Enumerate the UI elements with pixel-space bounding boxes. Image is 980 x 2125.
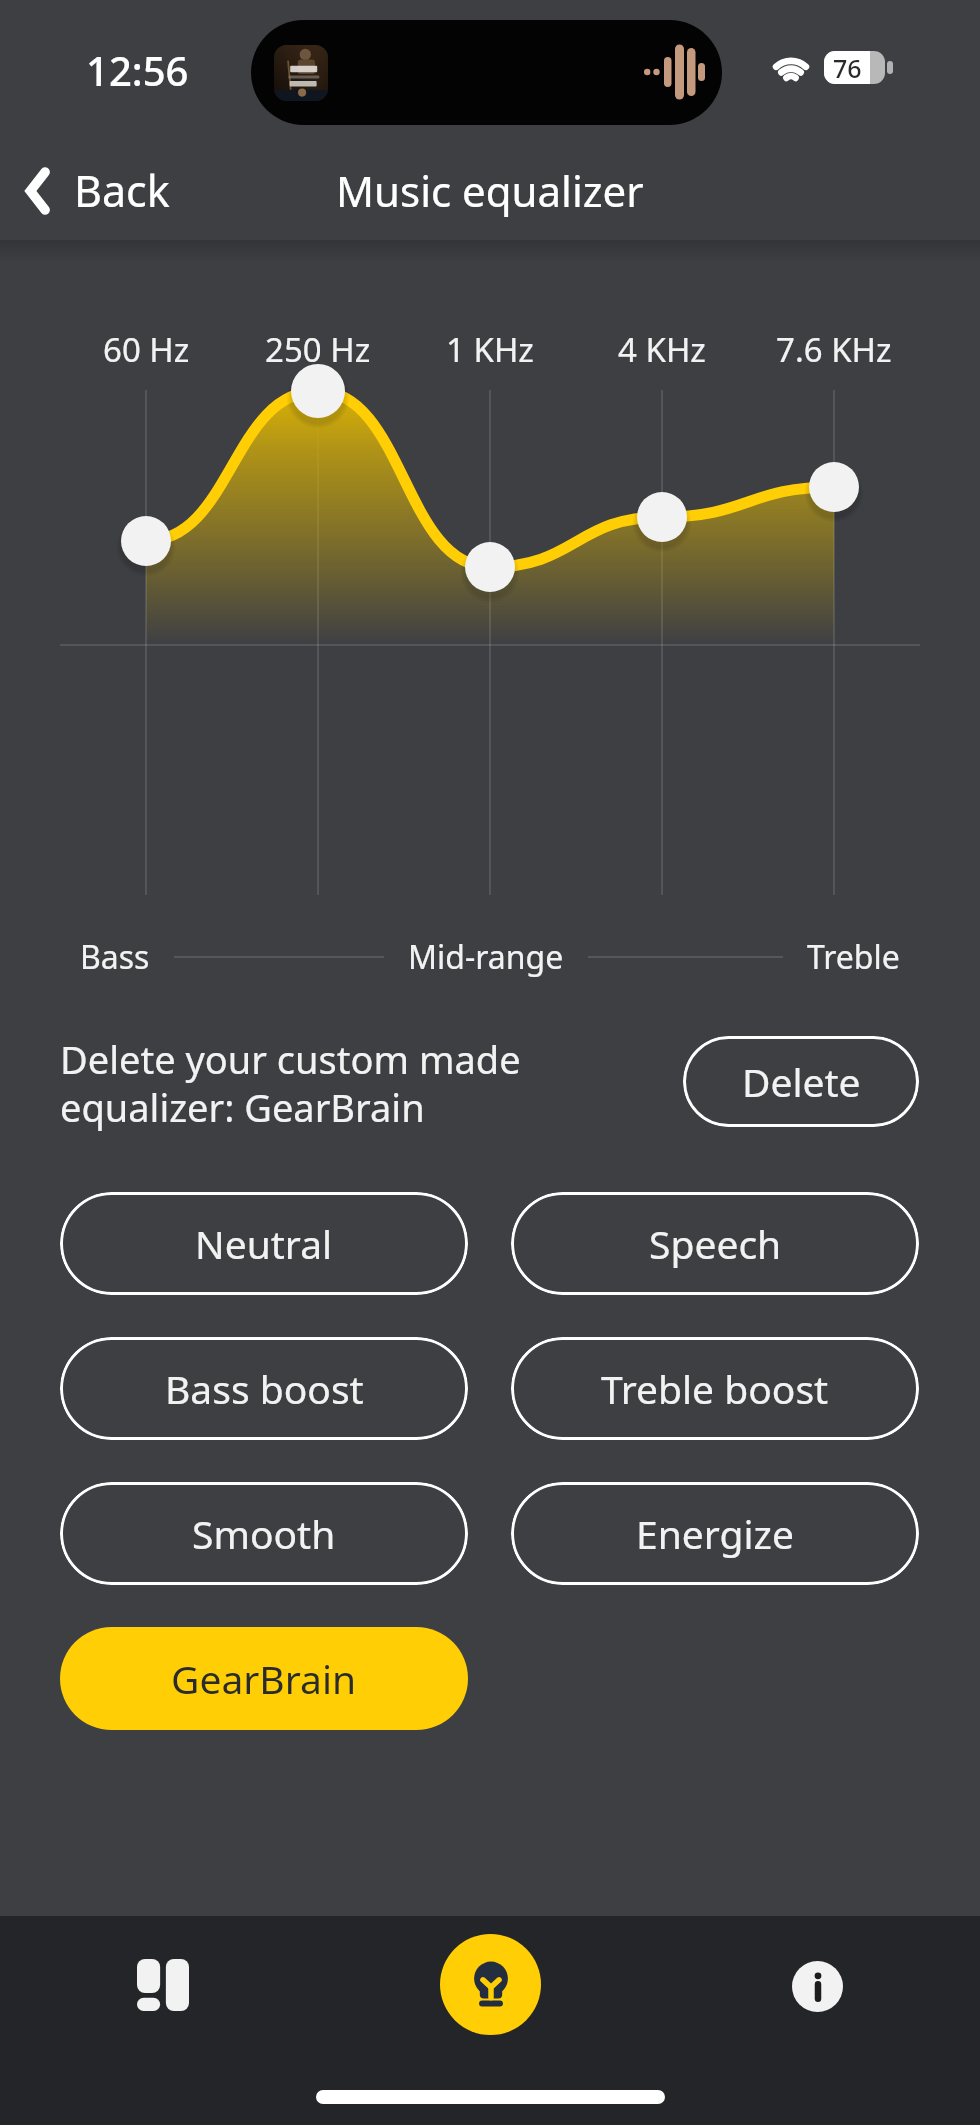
staticText: 4 KHz <box>618 327 706 372</box>
staticText: 250 Hz <box>265 327 371 372</box>
button[interactable]: GearBrain <box>60 1627 468 1730</box>
staticText: 12:56 <box>86 43 189 97</box>
button[interactable]: Dashboard <box>98 1921 228 2051</box>
other: Back <box>18 163 74 219</box>
staticText: Bass <box>80 935 150 979</box>
staticText: Bass boost <box>165 1362 364 1415</box>
staticText: Back <box>74 161 170 220</box>
button[interactable]: Info <box>752 1921 882 2051</box>
staticText: Neutral <box>195 1217 333 1270</box>
staticText: Delete <box>742 1055 861 1108</box>
button[interactable]: Speech <box>511 1192 919 1295</box>
staticText: Music equalizer <box>336 162 644 219</box>
staticText: Treble boost <box>601 1362 829 1415</box>
button[interactable]: Treble boost <box>511 1337 919 1440</box>
button[interactable]: Smooth <box>60 1482 468 1585</box>
staticText: 7.6 KHz <box>776 327 892 372</box>
button[interactable]: Delete <box>683 1036 919 1127</box>
staticText: 76 <box>833 51 862 84</box>
button[interactable]: Bass boost <box>60 1337 468 1440</box>
staticText: Speech <box>649 1217 782 1270</box>
staticText: Delete your custom made equalizer: GearB… <box>60 1033 521 1133</box>
staticText: 1 KHz <box>446 327 534 372</box>
other: Wi-Fi <box>769 50 813 82</box>
button[interactable]: Ideas <box>425 1919 555 2049</box>
staticText: Mid-range <box>408 935 564 979</box>
button[interactable]: Neutral <box>60 1192 468 1295</box>
staticText: 60 Hz <box>103 327 190 372</box>
staticText: Treble <box>807 935 900 979</box>
staticText: Smooth <box>192 1507 336 1560</box>
button[interactable]: Energize <box>511 1482 919 1585</box>
staticText: GearBrain <box>171 1652 357 1705</box>
button[interactable]: Back <box>18 161 170 220</box>
staticText: Energize <box>636 1507 794 1560</box>
